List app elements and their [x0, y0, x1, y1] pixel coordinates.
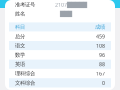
staticText: 数学: [15, 52, 25, 58]
staticText: 成绩: [95, 24, 105, 30]
staticText: 英语: [15, 61, 25, 68]
staticText: 姓名: [15, 10, 25, 17]
staticText: 总分: [15, 33, 25, 40]
staticText: 0: [102, 79, 105, 86]
staticText: 96: [99, 51, 105, 58]
staticText: 459: [96, 33, 105, 40]
staticText: 科目: [15, 24, 25, 30]
staticText: 88: [99, 61, 105, 68]
staticText: 108: [96, 42, 105, 49]
staticText: 167: [96, 70, 105, 77]
staticText: 理科综合: [15, 70, 35, 77]
staticText: 准考证号: [15, 1, 35, 8]
staticText: 语文: [15, 42, 25, 49]
staticText: 2107█████: [55, 1, 87, 8]
staticText: 文科综合: [15, 80, 35, 86]
